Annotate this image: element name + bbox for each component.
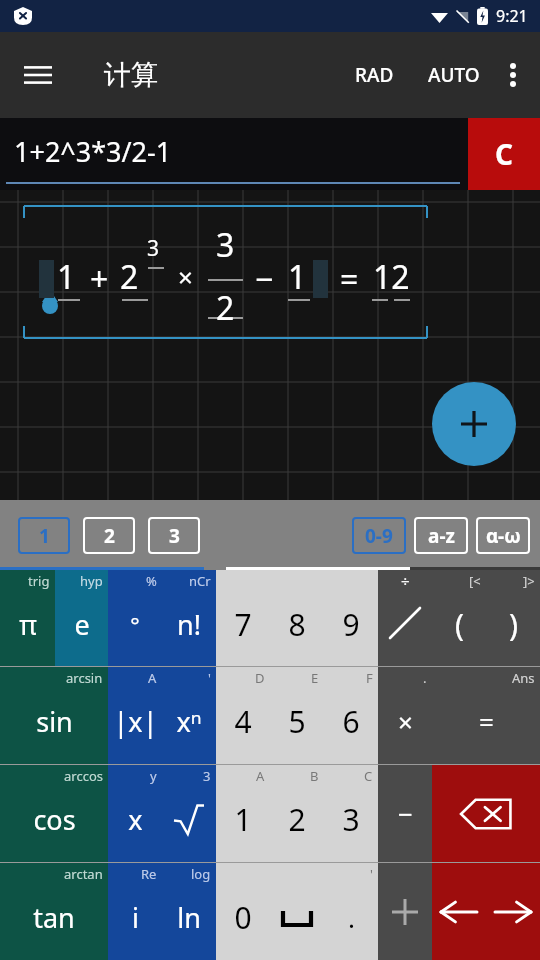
staticText: arctan — [64, 865, 103, 883]
button[interactable]: . — [378, 667, 432, 764]
staticText: xⁿ — [176, 703, 202, 740]
button[interactable]: Re — [108, 863, 162, 960]
staticText: 3 — [216, 223, 235, 267]
staticText: ÷ — [401, 571, 410, 591]
staticText: arcsin — [66, 669, 103, 687]
staticText: [< — [469, 572, 481, 590]
button[interactable]: Add — [432, 382, 516, 466]
staticText: y — [150, 767, 157, 785]
staticText: 1 — [234, 799, 252, 840]
button[interactable]: arccos — [0, 765, 108, 862]
button[interactable]: 9 — [324, 570, 378, 666]
button[interactable]: arctan — [0, 863, 108, 960]
staticText: 1+2^3*3/2-1 — [14, 133, 172, 170]
staticText: 0 — [234, 897, 252, 938]
button[interactable]: nCr — [162, 570, 216, 666]
staticText: 7 — [234, 604, 252, 645]
staticText: i — [132, 899, 139, 936]
staticText: e — [74, 606, 90, 643]
button[interactable]: [< — [432, 570, 486, 666]
staticText: nCr — [189, 572, 211, 590]
button[interactable]: D — [216, 667, 270, 764]
staticText: 12 — [373, 255, 410, 299]
staticText: AUTO — [428, 62, 480, 88]
staticText: 4 — [234, 701, 252, 742]
button[interactable]: Move right — [486, 863, 540, 960]
button[interactable]: E — [270, 667, 324, 764]
staticText: Ans — [512, 669, 535, 687]
button[interactable]: 3 — [162, 765, 216, 862]
staticText: ( — [455, 604, 464, 645]
button[interactable]: 1 — [18, 517, 70, 554]
staticText: E — [311, 669, 319, 687]
staticText: ' — [208, 669, 211, 687]
button[interactable]: hyp — [55, 570, 108, 666]
button[interactable]: 8 — [270, 570, 324, 666]
staticText: Re — [141, 865, 157, 883]
staticText: 3 — [169, 523, 180, 549]
staticText: 9 — [342, 604, 360, 645]
button[interactable] — [378, 863, 432, 960]
staticText: A — [256, 767, 265, 785]
staticText: trig — [28, 572, 50, 590]
button[interactable]: trig — [0, 570, 55, 666]
button[interactable]: 1+2^3*3/2-1 — [0, 118, 468, 190]
staticText: 2 — [288, 799, 306, 840]
staticText: − — [255, 257, 274, 301]
button[interactable]: Ans — [432, 667, 540, 764]
staticText: 2 — [104, 523, 115, 549]
button[interactable]: AUTO — [418, 50, 490, 100]
button[interactable]: C — [468, 118, 540, 190]
staticText: hyp — [80, 572, 103, 590]
staticText: = — [340, 257, 359, 301]
button[interactable]: RAD — [345, 50, 404, 100]
button[interactable]: Space — [270, 863, 324, 960]
staticText: . — [423, 669, 427, 687]
staticText: = — [479, 704, 494, 739]
staticText: log — [191, 865, 211, 883]
button[interactable]: a-z — [414, 517, 468, 554]
staticText: C — [364, 767, 373, 785]
button[interactable]: 2 — [83, 517, 135, 554]
staticText: × — [178, 259, 193, 294]
button[interactable]: ÷ — [378, 570, 432, 666]
button[interactable]: y — [108, 765, 162, 862]
button[interactable]: Backspace — [432, 765, 540, 862]
staticText: ]> — [523, 572, 535, 590]
staticText: |x| — [113, 703, 158, 740]
button[interactable]: 7 — [216, 570, 270, 666]
button[interactable]: Move left — [432, 863, 486, 960]
staticText: 2 — [216, 286, 235, 330]
button[interactable]: ' — [324, 863, 378, 960]
staticText: 8 — [288, 604, 306, 645]
button[interactable]: log — [162, 863, 216, 960]
staticText: B — [310, 767, 319, 785]
staticText: 1 — [57, 255, 76, 299]
staticText: n! — [177, 606, 201, 643]
button[interactable]: ɑ-ω — [476, 517, 530, 554]
staticText: − — [398, 796, 413, 831]
button[interactable]: − — [378, 765, 432, 862]
staticText: . — [348, 900, 355, 935]
button[interactable]: 3 — [148, 517, 200, 554]
button[interactable]: % — [108, 570, 162, 666]
staticText: ln — [177, 899, 201, 936]
button[interactable]: B — [270, 765, 324, 862]
button[interactable]: ]> — [486, 570, 540, 666]
staticText: ° — [130, 609, 140, 639]
button[interactable]: 0-9 — [352, 517, 406, 554]
button[interactable]: ' — [162, 667, 216, 764]
staticText: A — [148, 669, 157, 687]
button[interactable]: C — [324, 765, 378, 862]
staticText: a-z — [428, 523, 455, 549]
button[interactable]: A — [108, 667, 162, 764]
button[interactable]: 0 — [216, 863, 270, 960]
staticText: π — [19, 606, 37, 643]
button[interactable]: More options — [490, 52, 536, 98]
button[interactable]: F — [324, 667, 378, 764]
staticText: 3 — [342, 799, 360, 840]
button[interactable]: arcsin — [0, 667, 108, 764]
button[interactable]: Menu — [14, 51, 62, 99]
staticText: + — [90, 257, 109, 301]
button[interactable]: A — [216, 765, 270, 862]
